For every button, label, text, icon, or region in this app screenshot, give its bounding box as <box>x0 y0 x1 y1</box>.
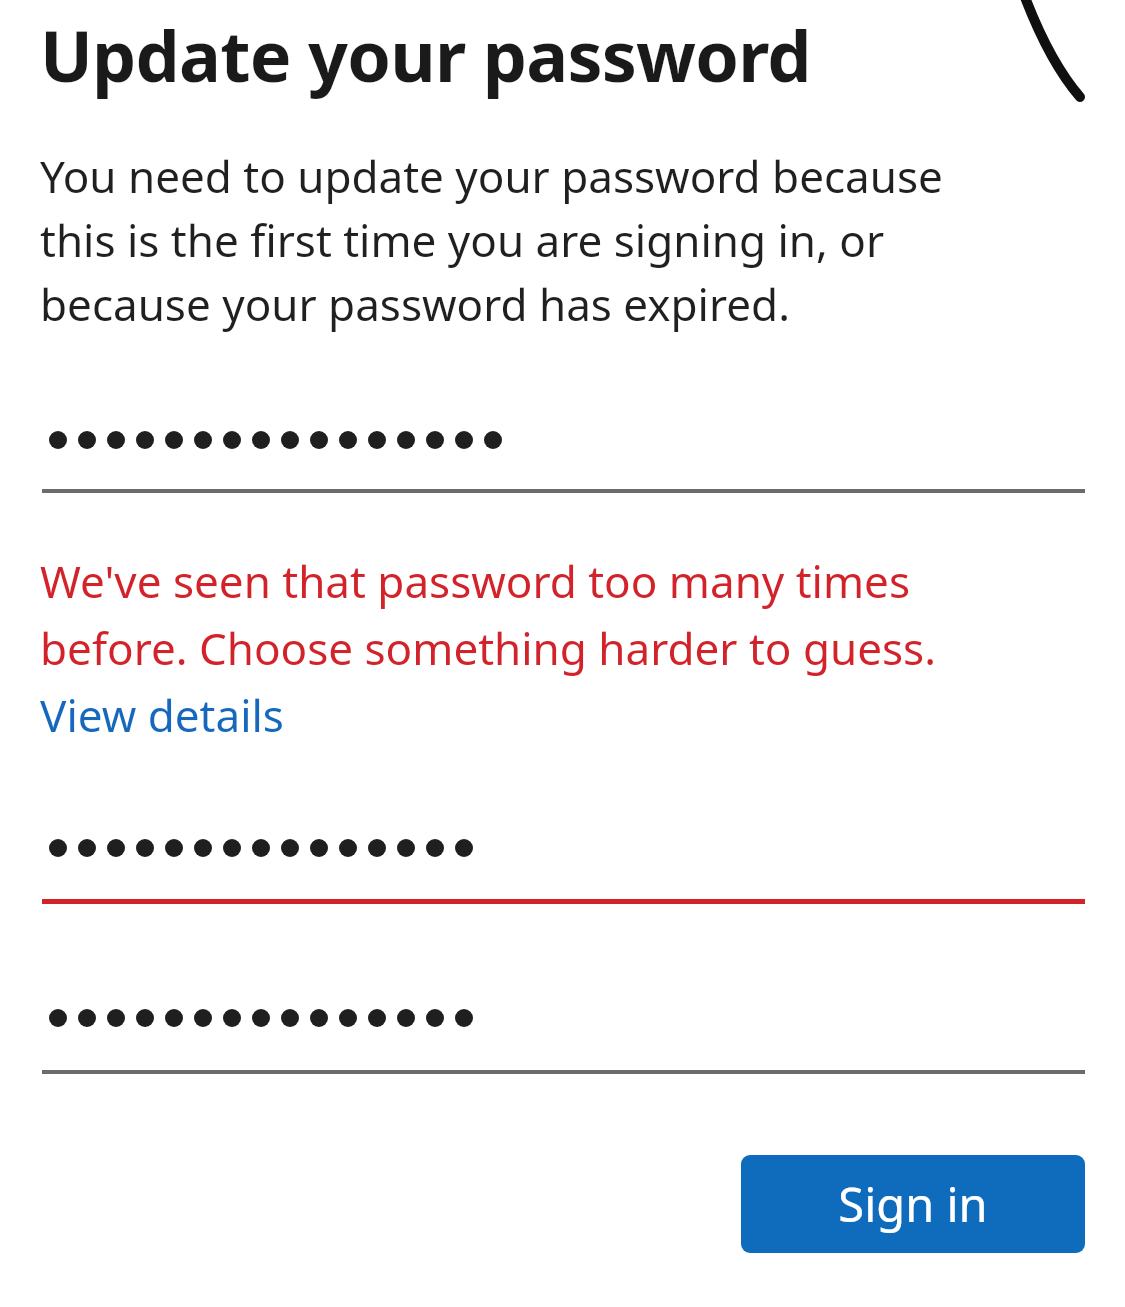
staticText: View details <box>40 685 284 745</box>
staticText: Update your password <box>40 7 811 102</box>
staticText: We've seen that password too many times … <box>40 551 1040 677</box>
staticText: You need to update your password because… <box>40 146 1025 334</box>
button[interactable]: Sign in <box>741 1155 1085 1253</box>
button[interactable]: New password <box>42 839 1085 904</box>
staticText: Sign in <box>838 1172 988 1236</box>
button[interactable]: Current password <box>42 431 1085 493</box>
button[interactable]: Confirm new password <box>42 1009 1085 1074</box>
button[interactable]: View details <box>40 685 284 745</box>
